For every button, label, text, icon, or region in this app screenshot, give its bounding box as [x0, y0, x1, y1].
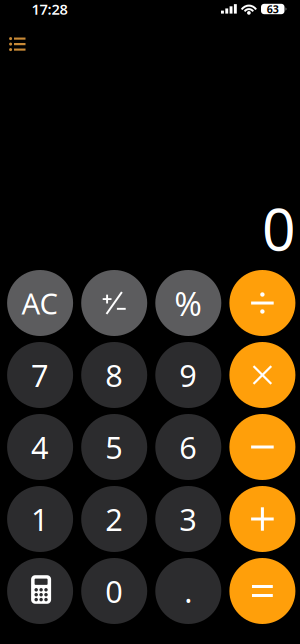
- button[interactable]: Divide: [229, 270, 295, 336]
- button[interactable]: History: [0, 29, 55, 59]
- button[interactable]: Minus: [229, 414, 295, 480]
- button[interactable]: Multiply: [229, 342, 295, 408]
- button[interactable]: 5: [81, 414, 147, 480]
- button[interactable]: 1: [7, 486, 73, 552]
- staticText: 7: [31, 355, 49, 395]
- button[interactable]: AC: [7, 270, 73, 336]
- staticText: 4: [31, 427, 49, 467]
- staticText: 63: [267, 2, 279, 16]
- button[interactable]: %: [155, 270, 221, 336]
- staticText: 0: [262, 189, 296, 267]
- button[interactable]: Plus: [229, 486, 295, 552]
- staticText: .: [184, 571, 192, 611]
- button[interactable]: 3: [155, 486, 221, 552]
- staticText: 17:28: [31, 0, 67, 19]
- staticText: 5: [105, 427, 123, 467]
- button[interactable]: 8: [81, 342, 147, 408]
- button[interactable]: 4: [7, 414, 73, 480]
- button[interactable]: Calculator: [7, 558, 73, 624]
- staticText: 1: [31, 499, 49, 539]
- staticText: 3: [179, 499, 197, 539]
- button[interactable]: 2: [81, 486, 147, 552]
- button[interactable]: 6: [155, 414, 221, 480]
- staticText: 9: [179, 355, 197, 395]
- button[interactable]: Equals: [229, 558, 295, 624]
- button[interactable]: 0: [81, 558, 147, 624]
- button[interactable]: .: [155, 558, 221, 624]
- button[interactable]: Plus Minus: [81, 270, 147, 336]
- staticText: AC: [22, 283, 59, 322]
- button[interactable]: 7: [7, 342, 73, 408]
- staticText: %: [174, 281, 202, 325]
- staticText: 2: [105, 499, 123, 539]
- staticText: 0: [105, 571, 123, 611]
- staticText: 8: [105, 355, 123, 395]
- button[interactable]: 9: [155, 342, 221, 408]
- staticText: 6: [179, 427, 197, 467]
